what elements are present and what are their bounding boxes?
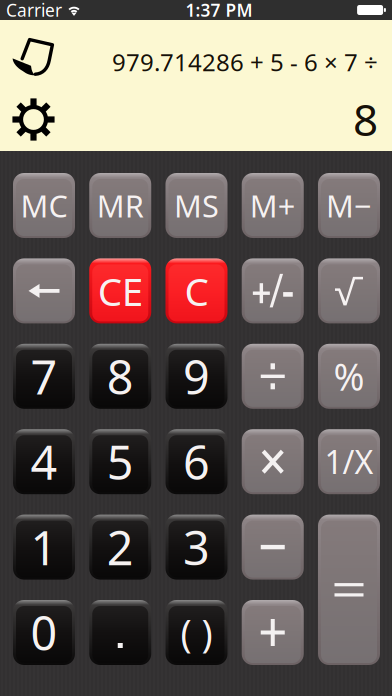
staticText: 5 — [107, 431, 134, 493]
staticText: 1:37 PM — [185, 0, 252, 21]
button[interactable]: 6 — [165, 429, 227, 494]
staticText: M− — [326, 185, 372, 226]
staticText: C — [184, 265, 208, 316]
button[interactable]: ( ) — [165, 600, 227, 665]
staticText: 1/X — [324, 440, 373, 483]
button[interactable]: Equals — [318, 515, 380, 665]
button[interactable]: Square root — [318, 258, 380, 323]
staticText: MC — [20, 185, 67, 226]
staticText: 2 — [107, 516, 134, 578]
button[interactable]: M+ — [242, 173, 304, 238]
button[interactable]: 7 — [13, 344, 75, 409]
staticText: 0 — [30, 601, 57, 663]
button[interactable]: MR — [89, 173, 151, 238]
button[interactable]: 2 — [89, 515, 151, 580]
staticText: 979.714286 + 5 - 6 × 7 ÷ — [112, 46, 378, 78]
staticText: Carrier — [6, 0, 62, 21]
button[interactable]: Decimal point — [89, 600, 151, 665]
button[interactable]: 1 — [13, 515, 75, 580]
staticText: 8 — [353, 90, 378, 148]
button[interactable]: 3 — [165, 515, 227, 580]
button[interactable]: Divide — [242, 344, 304, 409]
staticText: MS — [174, 185, 219, 226]
staticText: M+ — [250, 185, 296, 226]
button[interactable]: M− — [318, 173, 380, 238]
staticText: 9 — [183, 345, 210, 407]
button[interactable]: MC — [13, 173, 75, 238]
button[interactable]: % — [318, 344, 380, 409]
button[interactable]: 1/X — [318, 429, 380, 494]
staticText: 1 — [30, 516, 57, 578]
staticText: 8 — [107, 345, 134, 407]
staticText: 7 — [30, 345, 57, 407]
staticText: 4 — [30, 431, 57, 493]
staticText: 3 — [183, 516, 210, 578]
button[interactable]: 4 — [13, 429, 75, 494]
staticText: % — [333, 351, 364, 401]
button[interactable]: Minus — [242, 515, 304, 580]
button[interactable]: 5 — [89, 429, 151, 494]
button[interactable]: 9 — [165, 344, 227, 409]
button[interactable]: 8 — [89, 344, 151, 409]
staticText: ( ) — [180, 608, 212, 657]
button[interactable]: Settings — [2, 93, 64, 145]
button[interactable]: MS — [165, 173, 227, 238]
staticText: MR — [97, 185, 144, 226]
button[interactable]: Tape — [2, 32, 64, 84]
button[interactable]: Plus minus — [242, 258, 304, 323]
button[interactable]: 0 — [13, 600, 75, 665]
staticText: 6 — [183, 431, 210, 493]
button[interactable]: C — [165, 258, 227, 323]
button[interactable]: Backspace — [13, 258, 75, 323]
button[interactable]: CE — [89, 258, 151, 323]
button[interactable]: Plus — [242, 600, 304, 665]
staticText: CE — [98, 265, 143, 316]
button[interactable]: Multiply — [242, 429, 304, 494]
